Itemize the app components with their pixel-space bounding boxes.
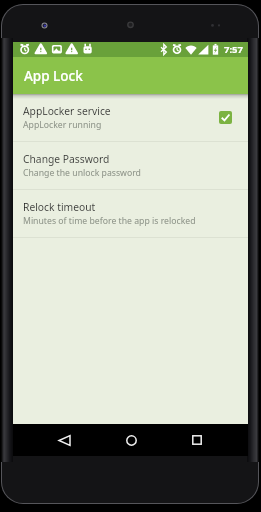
staticText: Minutes of time before the app is relock…	[23, 215, 196, 227]
button[interactable]: Back	[48, 424, 80, 456]
button[interactable]: Home	[115, 424, 147, 456]
staticText: AppLocker running	[23, 119, 102, 131]
staticText: App Lock	[24, 67, 83, 85]
button[interactable]: Recent apps	[181, 424, 213, 456]
button[interactable]: Change Password	[13, 142, 248, 189]
button[interactable]: Relock timeout	[13, 190, 248, 237]
staticText: Relock timeout	[23, 200, 96, 214]
staticText: AppLocker service	[23, 104, 111, 118]
staticText: Change the unlock password	[23, 167, 141, 179]
button[interactable]: AppLocker service	[13, 94, 248, 141]
staticText: 7:57	[224, 43, 243, 56]
staticText: Change Password	[23, 152, 110, 166]
other: AppLocker service enabled	[219, 111, 232, 124]
